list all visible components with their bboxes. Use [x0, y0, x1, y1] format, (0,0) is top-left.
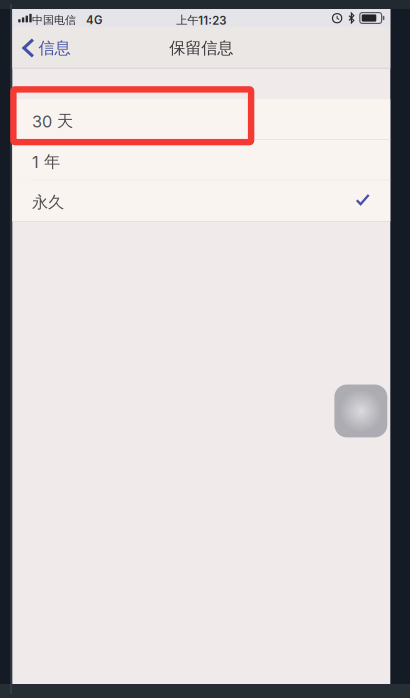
- staticText: 1 年: [32, 152, 60, 172]
- staticText: 永久: [32, 192, 64, 213]
- staticText: 4G: [86, 13, 102, 27]
- button[interactable]: 1 年: [12, 140, 390, 180]
- staticText: 上午11:23: [176, 13, 226, 27]
- staticText: 信息: [38, 38, 70, 58]
- button[interactable]: 永久: [12, 180, 390, 221]
- staticText: 30 天: [32, 111, 73, 131]
- staticText: 中国电信: [32, 13, 76, 27]
- button[interactable]: 30 天: [12, 99, 390, 140]
- button[interactable]: AssistiveTouch: [334, 384, 387, 437]
- button[interactable]: 信息: [14, 27, 80, 68]
- staticText: 保留信息: [169, 38, 233, 58]
